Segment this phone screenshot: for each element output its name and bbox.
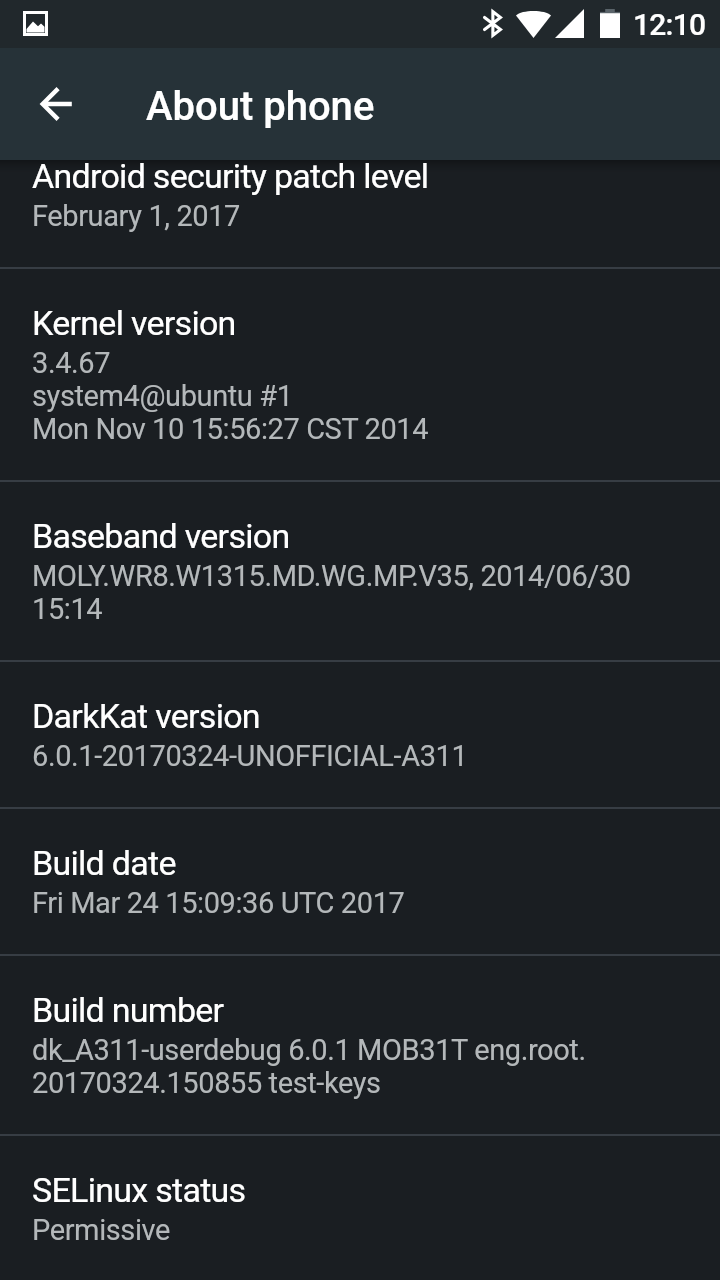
staticText: 15:14 (32, 593, 103, 626)
staticText: system4@ubuntu #1 (32, 380, 293, 413)
staticText: MOLY.WR8.W1315.MD.WG.MP.V35, 2014/06/30 (32, 560, 631, 593)
staticText: Android security patch level (32, 160, 429, 196)
staticText: Build date (32, 843, 176, 883)
staticText: Mon Nov 10 15:56:27 CST 2014 (32, 413, 429, 446)
staticText: 12:10 (633, 7, 706, 42)
button[interactable]: Kernel version (0, 269, 720, 480)
button[interactable]: DarkKat version (0, 662, 720, 807)
staticText: Build number (32, 990, 224, 1030)
staticText: February 1, 2017 (32, 200, 240, 233)
staticText: About phone (146, 83, 375, 130)
staticText: Permissive (32, 1214, 171, 1247)
staticText: dk_A311-userdebug 6.0.1 MOB31T eng.root. (32, 1034, 586, 1067)
button[interactable]: Build date (0, 809, 720, 954)
button[interactable]: SELinux status (0, 1136, 720, 1280)
staticText: SELinux status (32, 1170, 246, 1210)
staticText: 20170324.150855 test-keys (32, 1067, 381, 1100)
staticText: 6.0.1-20170324-UNOFFICIAL-A311 (32, 740, 468, 773)
button[interactable]: Build number (0, 956, 720, 1134)
button[interactable]: Navigate up (21, 68, 93, 140)
staticText: Baseband version (32, 516, 290, 556)
button[interactable]: Baseband version (0, 482, 720, 660)
button[interactable]: Android security patch level (0, 160, 720, 267)
staticText: DarkKat version (32, 696, 260, 736)
staticText: Fri Mar 24 15:09:36 UTC 2017 (32, 887, 405, 920)
staticText: Kernel version (32, 303, 236, 343)
staticText: 3.4.67 (32, 347, 111, 380)
